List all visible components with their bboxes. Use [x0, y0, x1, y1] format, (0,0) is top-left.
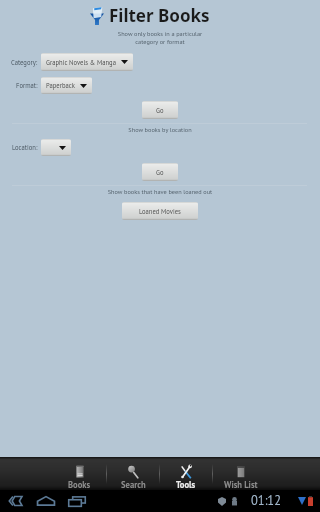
staticText: Wish List	[224, 479, 258, 490]
other: Back	[9, 496, 22, 506]
staticText: Location:	[12, 143, 38, 152]
button[interactable]	[41, 139, 71, 156]
button[interactable]: Tools	[160, 457, 212, 490]
button[interactable]: Search	[107, 457, 159, 490]
staticText: Show only books in a particular category…	[0, 30, 320, 46]
staticText: Tools	[176, 479, 196, 490]
staticText: Filter Books	[109, 4, 210, 27]
staticText: Books	[68, 479, 91, 490]
staticText: Paperback	[46, 81, 75, 90]
staticText: Graphic Novels & Manga	[46, 58, 116, 67]
other: Search	[127, 464, 139, 479]
other: Home	[37, 496, 55, 506]
staticText: Show books that have been loaned out	[0, 188, 320, 196]
staticText: Category:	[11, 58, 38, 67]
other: Tools	[180, 464, 192, 479]
button[interactable]: Books	[53, 457, 106, 490]
staticText: Format:	[16, 81, 38, 90]
button[interactable]: Paperback	[41, 77, 92, 94]
button[interactable]: Graphic Novels & Manga	[41, 53, 133, 71]
button[interactable]: Go	[142, 163, 178, 181]
staticText: Go	[156, 168, 164, 177]
button[interactable]: Wish List	[213, 457, 268, 490]
button[interactable]: Go	[142, 101, 178, 119]
staticText: Go	[156, 106, 164, 115]
other: Books	[74, 464, 86, 479]
staticText: Loaned Movies	[139, 207, 181, 216]
other: Recents	[68, 496, 86, 507]
other: Wish List	[235, 464, 247, 479]
staticText: Search	[121, 479, 146, 490]
button[interactable]: Loaned Movies	[122, 202, 198, 220]
staticText: Show books by location	[0, 126, 320, 134]
staticText: 01:12	[251, 492, 281, 508]
